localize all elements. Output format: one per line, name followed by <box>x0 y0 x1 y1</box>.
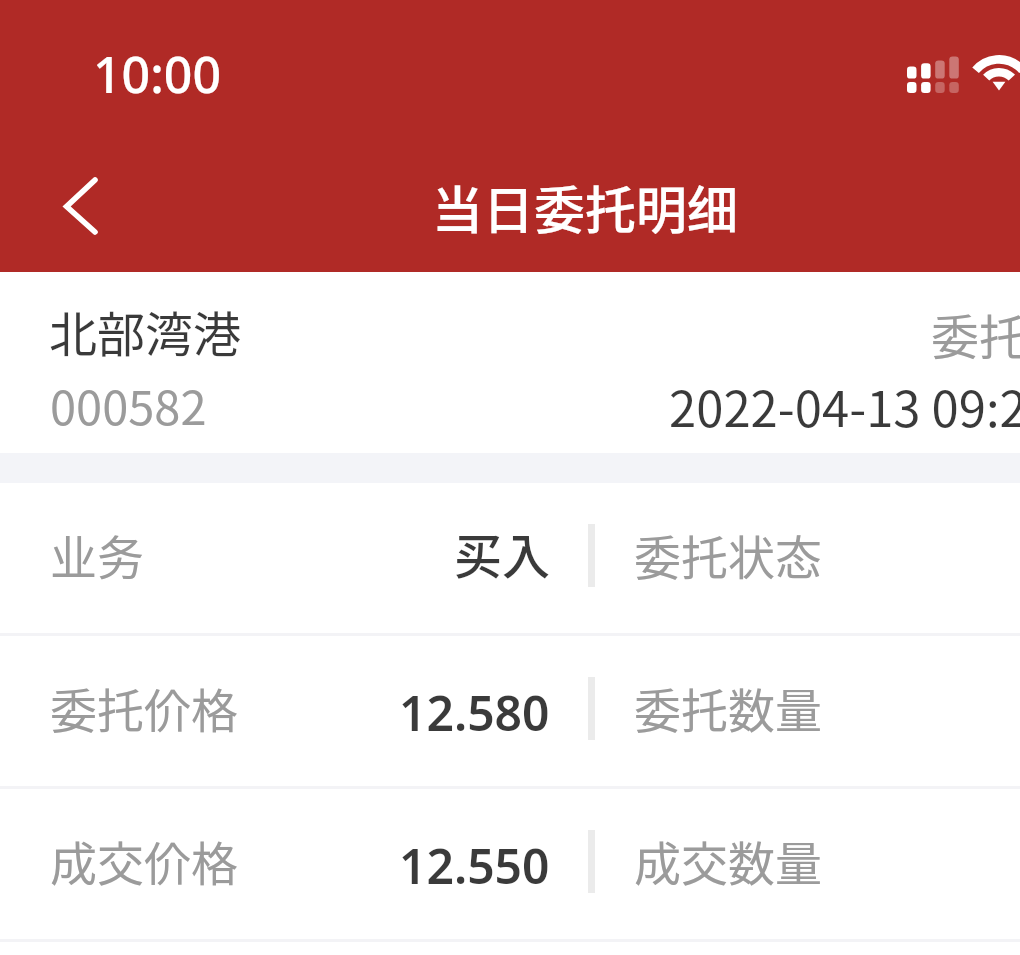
staticText: 成交价格 <box>50 826 238 894</box>
staticText: 当日委托明细 <box>432 170 739 244</box>
button[interactable]: Back <box>26 166 108 248</box>
staticText: 12.580 <box>399 680 550 745</box>
other: Wi-Fi <box>968 40 1020 100</box>
staticText: 成交数量 <box>634 826 822 894</box>
staticText: 北部湾港 <box>49 296 242 366</box>
staticText: 000582 <box>50 370 207 438</box>
staticText: 委托数量 <box>634 673 822 741</box>
button[interactable]: 北部湾港 <box>0 272 1020 453</box>
other: Mobile signal <box>907 52 963 98</box>
staticText: 委托时间 <box>931 299 1020 369</box>
staticText: 买入 <box>454 518 551 588</box>
staticText: 业务 <box>50 520 144 588</box>
staticText: 委托价格 <box>50 673 238 741</box>
staticText: 2022-04-13 09:25:33 <box>669 370 1020 441</box>
button[interactable]: 成交价格 <box>0 789 1020 942</box>
staticText: 委托状态 <box>634 520 822 588</box>
staticText: 10:00 <box>93 40 221 108</box>
button[interactable]: 委托价格 <box>0 636 1020 789</box>
button[interactable]: 业务 <box>0 483 1020 636</box>
staticText: 12.550 <box>399 833 550 898</box>
